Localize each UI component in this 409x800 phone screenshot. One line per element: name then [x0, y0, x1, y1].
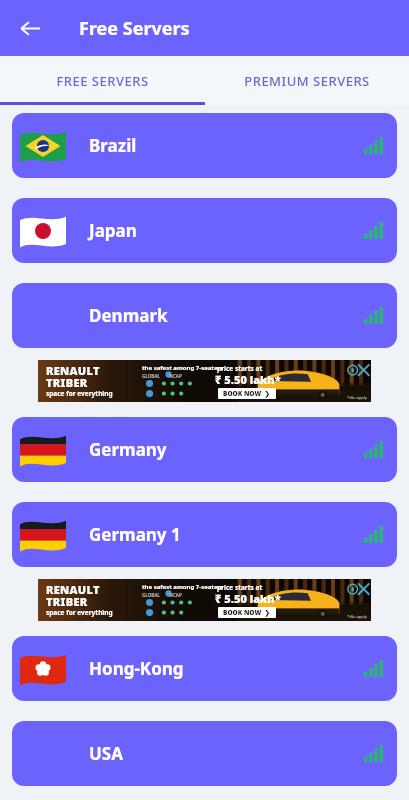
staticText: FREE SERVERS: [56, 72, 149, 90]
other: Signal strength: [364, 137, 383, 154]
staticText: TRIBER: [46, 375, 88, 390]
button[interactable]: FREE SERVERS: [0, 56, 204, 105]
staticText: BOOK NOW ❯: [223, 389, 271, 398]
other: Signal strength: [364, 222, 383, 239]
staticText: GLOBAL NCAP: [142, 373, 182, 379]
staticText: ₹ 5.50 lakh*: [215, 591, 281, 606]
staticText: Germany: [89, 438, 167, 461]
staticText: the safest among 7-seaters: [142, 364, 224, 372]
other: Signal strength: [364, 745, 383, 762]
staticText: BOOK NOW ❯: [223, 608, 271, 617]
button[interactable]: Denmark: [12, 283, 397, 348]
staticText: GLOBAL NCAP: [142, 592, 182, 598]
staticText: Hong-Kong: [89, 657, 184, 680]
other: Signal strength: [364, 441, 383, 458]
staticText: space for everything: [46, 608, 113, 617]
staticText: Germany 1: [89, 523, 181, 546]
staticText: the safest among 7-seaters: [142, 583, 224, 591]
staticText: Brazil: [89, 134, 137, 157]
staticText: Japan: [89, 219, 137, 242]
button[interactable]: Germany 1: [12, 502, 397, 567]
staticText: PREMIUM SERVERS: [244, 72, 370, 90]
button[interactable]: BOOK NOW ❯: [223, 608, 271, 617]
button[interactable]: Renault Triber advertisement: [38, 579, 371, 621]
staticText: price starts at: [217, 364, 263, 373]
button[interactable]: BOOK NOW ❯: [223, 389, 271, 398]
button[interactable]: Brazil: [12, 113, 397, 178]
staticText: Denmark: [89, 304, 168, 327]
staticText: ₹ 5.50 lakh*: [215, 372, 281, 387]
button[interactable]: Japan: [12, 198, 397, 263]
staticText: *t&c apply: [347, 395, 367, 400]
staticText: *t&c apply: [347, 614, 367, 619]
other: Signal strength: [364, 526, 383, 543]
staticText: price starts at: [217, 583, 263, 592]
staticText: RENAULT: [46, 363, 100, 378]
button[interactable]: PREMIUM SERVERS: [204, 56, 409, 105]
button[interactable]: USA: [12, 721, 397, 786]
other: Signal strength: [364, 660, 383, 677]
staticText: USA: [89, 742, 123, 765]
button[interactable]: Germany: [12, 417, 397, 482]
staticText: TRIBER: [46, 594, 88, 609]
staticText: space for everything: [46, 389, 113, 398]
button[interactable]: Renault Triber advertisement: [38, 360, 371, 402]
staticText: Free Servers: [79, 16, 190, 41]
other: Signal strength: [364, 307, 383, 324]
staticText: RENAULT: [46, 582, 100, 597]
button[interactable]: Hong-Kong: [12, 636, 397, 701]
button[interactable]: Back: [14, 12, 46, 44]
